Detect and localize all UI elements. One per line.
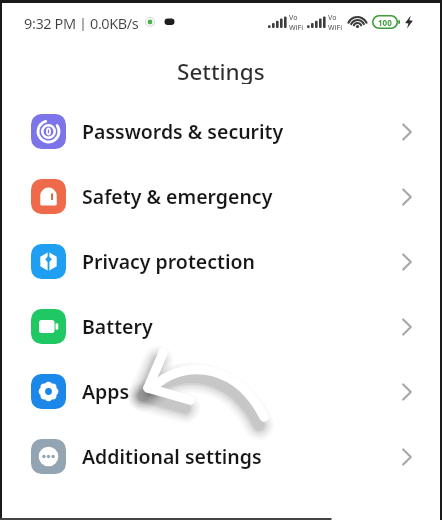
staticText: Safety & emergency <box>82 183 273 210</box>
staticText: WiFi <box>328 23 343 31</box>
button[interactable]: Privacy protection <box>0 229 442 294</box>
staticText: WiFi <box>289 23 304 31</box>
button[interactable]: Additional settings <box>0 424 442 489</box>
button[interactable]: Battery <box>0 294 442 359</box>
staticText: Additional settings <box>82 443 262 470</box>
staticText: 100 <box>378 17 392 28</box>
staticText: Vo <box>289 13 298 23</box>
button[interactable]: Passwords & security <box>0 99 442 164</box>
staticText: 9:32 PM | 0.0KB/s <box>24 13 139 31</box>
button[interactable]: Apps <box>0 359 442 424</box>
staticText: Battery <box>82 313 153 340</box>
button[interactable]: Safety & emergency <box>0 164 442 229</box>
staticText: Passwords & security <box>82 118 284 145</box>
staticText: Apps <box>82 378 130 405</box>
staticText: Vo <box>328 13 337 23</box>
staticText: Settings <box>177 56 265 84</box>
staticText: Privacy protection <box>82 248 255 275</box>
